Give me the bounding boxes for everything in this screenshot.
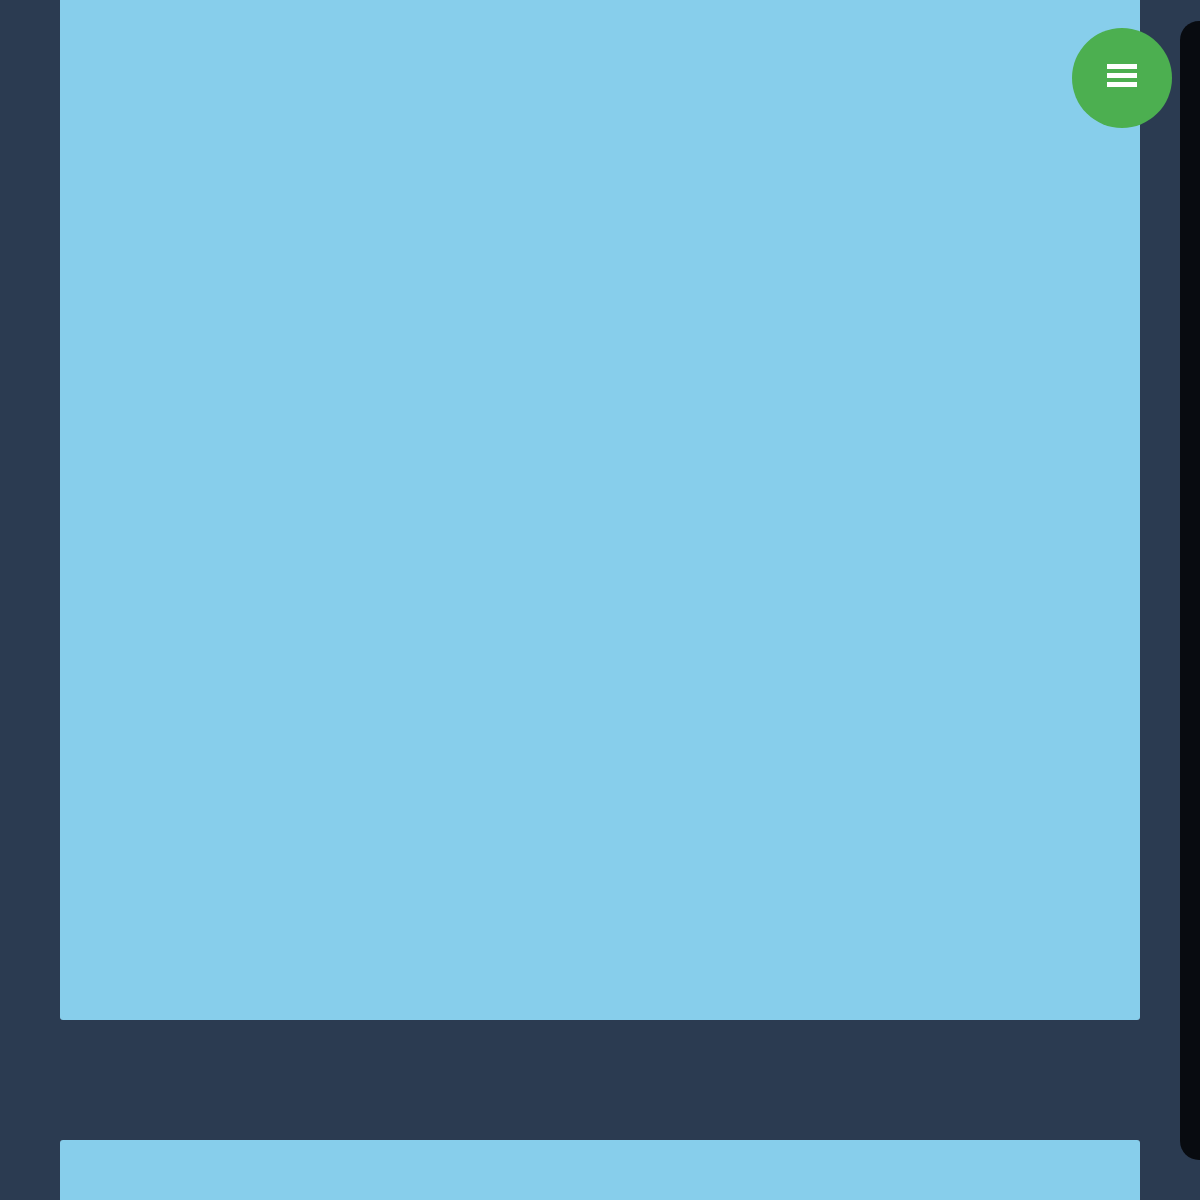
button[interactable]: Photo 1 [60,0,1140,1020]
other: Scroll position [1180,21,1200,1160]
button[interactable]: Open menu [1072,28,1172,128]
